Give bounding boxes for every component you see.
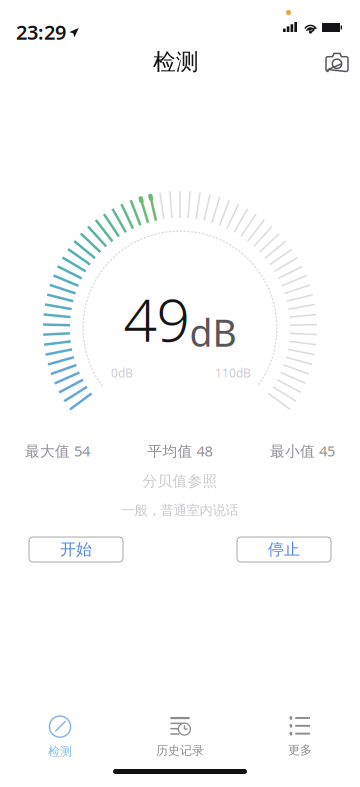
staticText: 最大值 54 [25,441,90,460]
button[interactable]: 检测 [0,715,120,759]
staticText: 0dB [111,365,133,381]
button[interactable]: 停止 [237,537,331,562]
staticText: 最小值 45 [270,441,335,460]
staticText: 更多 [288,743,312,757]
staticText: 分贝值参照 [142,472,217,490]
staticText: 检测 [48,744,72,759]
staticText: 49 [123,280,189,358]
staticText: 停止 [268,540,300,559]
button[interactable]: 历史记录 [120,716,240,758]
staticText: 一般，普通室内说话 [121,502,238,518]
staticText: 检测 [153,48,199,76]
button[interactable]: 更多 [240,717,360,757]
staticText: 23:29 [16,19,66,45]
staticText: 110dB [215,365,251,381]
staticText: 开始 [60,540,92,559]
staticText: 历史记录 [156,743,204,758]
button[interactable]: 开始 [29,537,123,562]
button[interactable]: Camera [318,44,356,79]
staticText: 平均值 48 [147,441,212,460]
staticText: dB [189,307,236,357]
